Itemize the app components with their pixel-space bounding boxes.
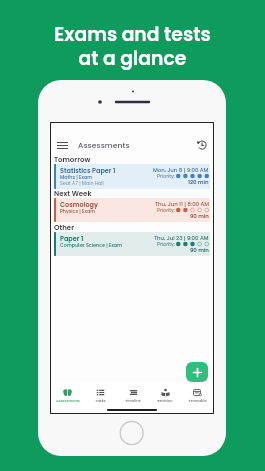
staticText: Thu, Jul 23 | 9:00 AM	[154, 234, 209, 242]
staticText: 120 min	[188, 178, 209, 186]
staticText: Timetable	[188, 398, 207, 403]
staticText: Statistics Paper 1	[60, 166, 116, 175]
staticText: 90 min	[190, 246, 209, 254]
staticText: Paper 1	[60, 234, 84, 243]
staticText: Priority:	[157, 207, 175, 214]
button[interactable]: Menu	[54, 137, 71, 154]
staticText: Assessments	[78, 140, 130, 151]
staticText: Computer Science | Exam	[60, 242, 123, 249]
button[interactable]: Revision	[149, 383, 181, 407]
staticText: Mon, Jun 8 | 9:00 AM	[153, 166, 209, 174]
button[interactable]: Timeline	[117, 383, 149, 407]
staticText: Physics | Exam	[60, 208, 96, 215]
button[interactable]: Statistics Paper 1	[54, 164, 210, 189]
staticText: Next Week	[54, 189, 92, 199]
staticText: Revision	[157, 398, 173, 403]
staticText: Assessments	[56, 398, 80, 403]
button[interactable]: Timetable	[181, 383, 213, 407]
staticText: Tomorrow	[54, 155, 91, 165]
staticText: 90 min	[190, 212, 209, 220]
button[interactable]: Add assessment	[186, 362, 208, 382]
staticText: Other	[54, 223, 74, 233]
button[interactable]: Cosmology	[54, 198, 210, 222]
staticText: Timeline	[125, 398, 141, 403]
button[interactable]: Assessments	[51, 383, 84, 407]
staticText: Cosmology	[60, 200, 98, 209]
staticText: Tasks	[95, 398, 106, 403]
staticText: Thu, Jun 11 | 8:00 AM	[155, 200, 209, 208]
button[interactable]: Tasks	[84, 383, 117, 407]
staticText: Priority:	[157, 173, 175, 180]
staticText: Exams and tests at a glance	[0, 21, 265, 72]
staticText: Maths | Exam	[60, 174, 93, 181]
staticText: Seat A7 | Main Hall	[60, 180, 104, 187]
button[interactable]: Paper 1	[54, 232, 210, 256]
button[interactable]: History	[193, 136, 211, 154]
staticText: Priority:	[157, 241, 175, 248]
